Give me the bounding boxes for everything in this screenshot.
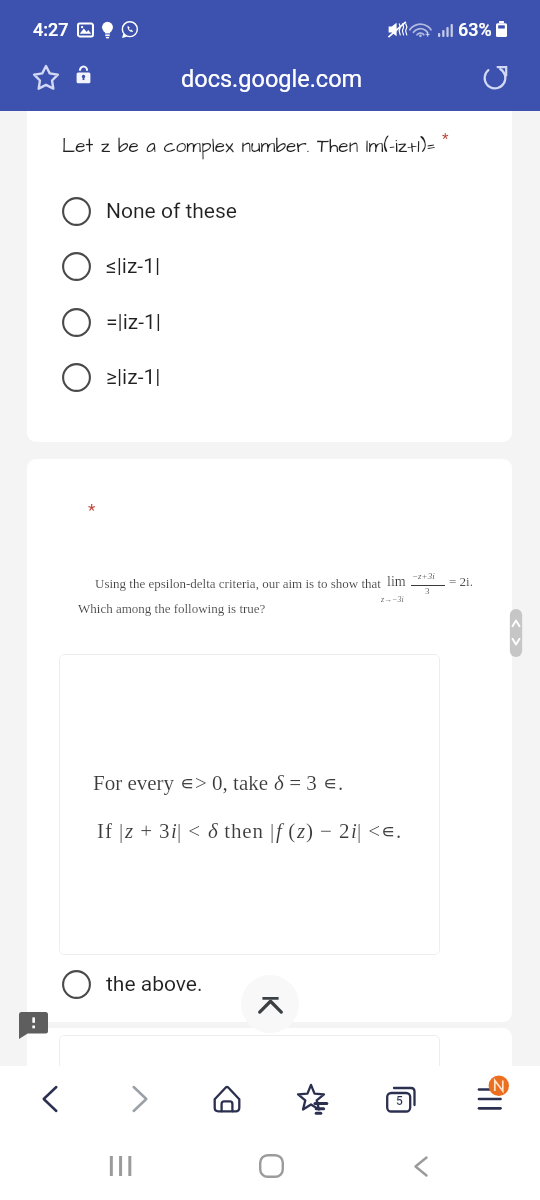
button[interactable]: Home [241, 1132, 301, 1200]
button[interactable]: =|iz-1| [27, 308, 512, 337]
staticText: ) − 2 [306, 819, 351, 842]
button[interactable]: docs.google.com [167, 58, 377, 100]
button[interactable]: Recent apps [89, 1132, 149, 1200]
staticText: Let z be a complex number. Then Im(-iz+1… [62, 133, 436, 159]
staticText: ≥|iz-1| [106, 365, 161, 390]
button[interactable]: Back [391, 1132, 451, 1200]
button[interactable]: Tabs [371, 1066, 429, 1132]
staticText: −z+3i [412, 571, 435, 581]
staticText: ≤|iz-1| [106, 254, 161, 279]
staticText: z [125, 819, 134, 842]
staticText: lim [387, 574, 406, 590]
staticText: | < [357, 819, 381, 842]
button[interactable]: Reload [476, 59, 513, 96]
button[interactable]: Menu [461, 1066, 519, 1132]
button[interactable]: Page info [19, 1012, 48, 1039]
button[interactable]: Bookmark [29, 60, 62, 93]
staticText: + 3 [134, 819, 171, 842]
staticText: ∊ [323, 771, 338, 794]
staticText: | < [177, 819, 208, 842]
button[interactable]: Scroll to top [241, 975, 299, 1033]
staticText: ∊ [180, 771, 195, 794]
staticText: For every [93, 771, 180, 794]
staticText: None of these [106, 199, 237, 224]
staticText: docs.google.com [181, 65, 363, 93]
staticText: * [442, 130, 449, 148]
staticText: = 2i. [449, 574, 473, 588]
button[interactable]: the above. [62, 970, 203, 999]
staticText: . [338, 771, 344, 794]
staticText: z [297, 819, 306, 842]
button[interactable]: Back [21, 1066, 79, 1132]
staticText: =|iz-1| [106, 310, 161, 335]
staticText: f [276, 819, 282, 842]
staticText: If | [97, 819, 125, 842]
staticText: 3 [425, 586, 430, 596]
staticText: i [171, 819, 177, 842]
button[interactable]: None of these [27, 197, 512, 226]
button[interactable]: ≥|iz-1| [27, 363, 512, 392]
staticText: then | [218, 819, 276, 842]
staticText: Using the epsilon-delta criteria, our ai… [95, 576, 381, 590]
button[interactable]: Bookmarks [284, 1066, 342, 1132]
staticText: the above. [106, 972, 203, 997]
staticText: i [351, 819, 357, 842]
staticText: δ [208, 819, 218, 842]
staticText: Which among the following is true? [78, 601, 266, 615]
button[interactable]: ≤|iz-1| [27, 252, 512, 281]
staticText: * [88, 500, 96, 520]
button[interactable]: Site information [69, 61, 97, 89]
button[interactable]: Forward [111, 1066, 169, 1132]
staticText: 63% [458, 19, 492, 40]
staticText: . [396, 819, 402, 842]
staticText: 5 [396, 1094, 403, 1108]
staticText: > 0, take [195, 771, 274, 794]
staticText: = 3 [284, 771, 323, 794]
staticText: ∊ [381, 819, 396, 842]
button[interactable]: Home [198, 1066, 256, 1132]
staticText: ( [282, 819, 297, 842]
staticText: δ [274, 771, 284, 794]
staticText: z→−3i [381, 595, 404, 604]
staticText: 4:27 [33, 19, 69, 40]
